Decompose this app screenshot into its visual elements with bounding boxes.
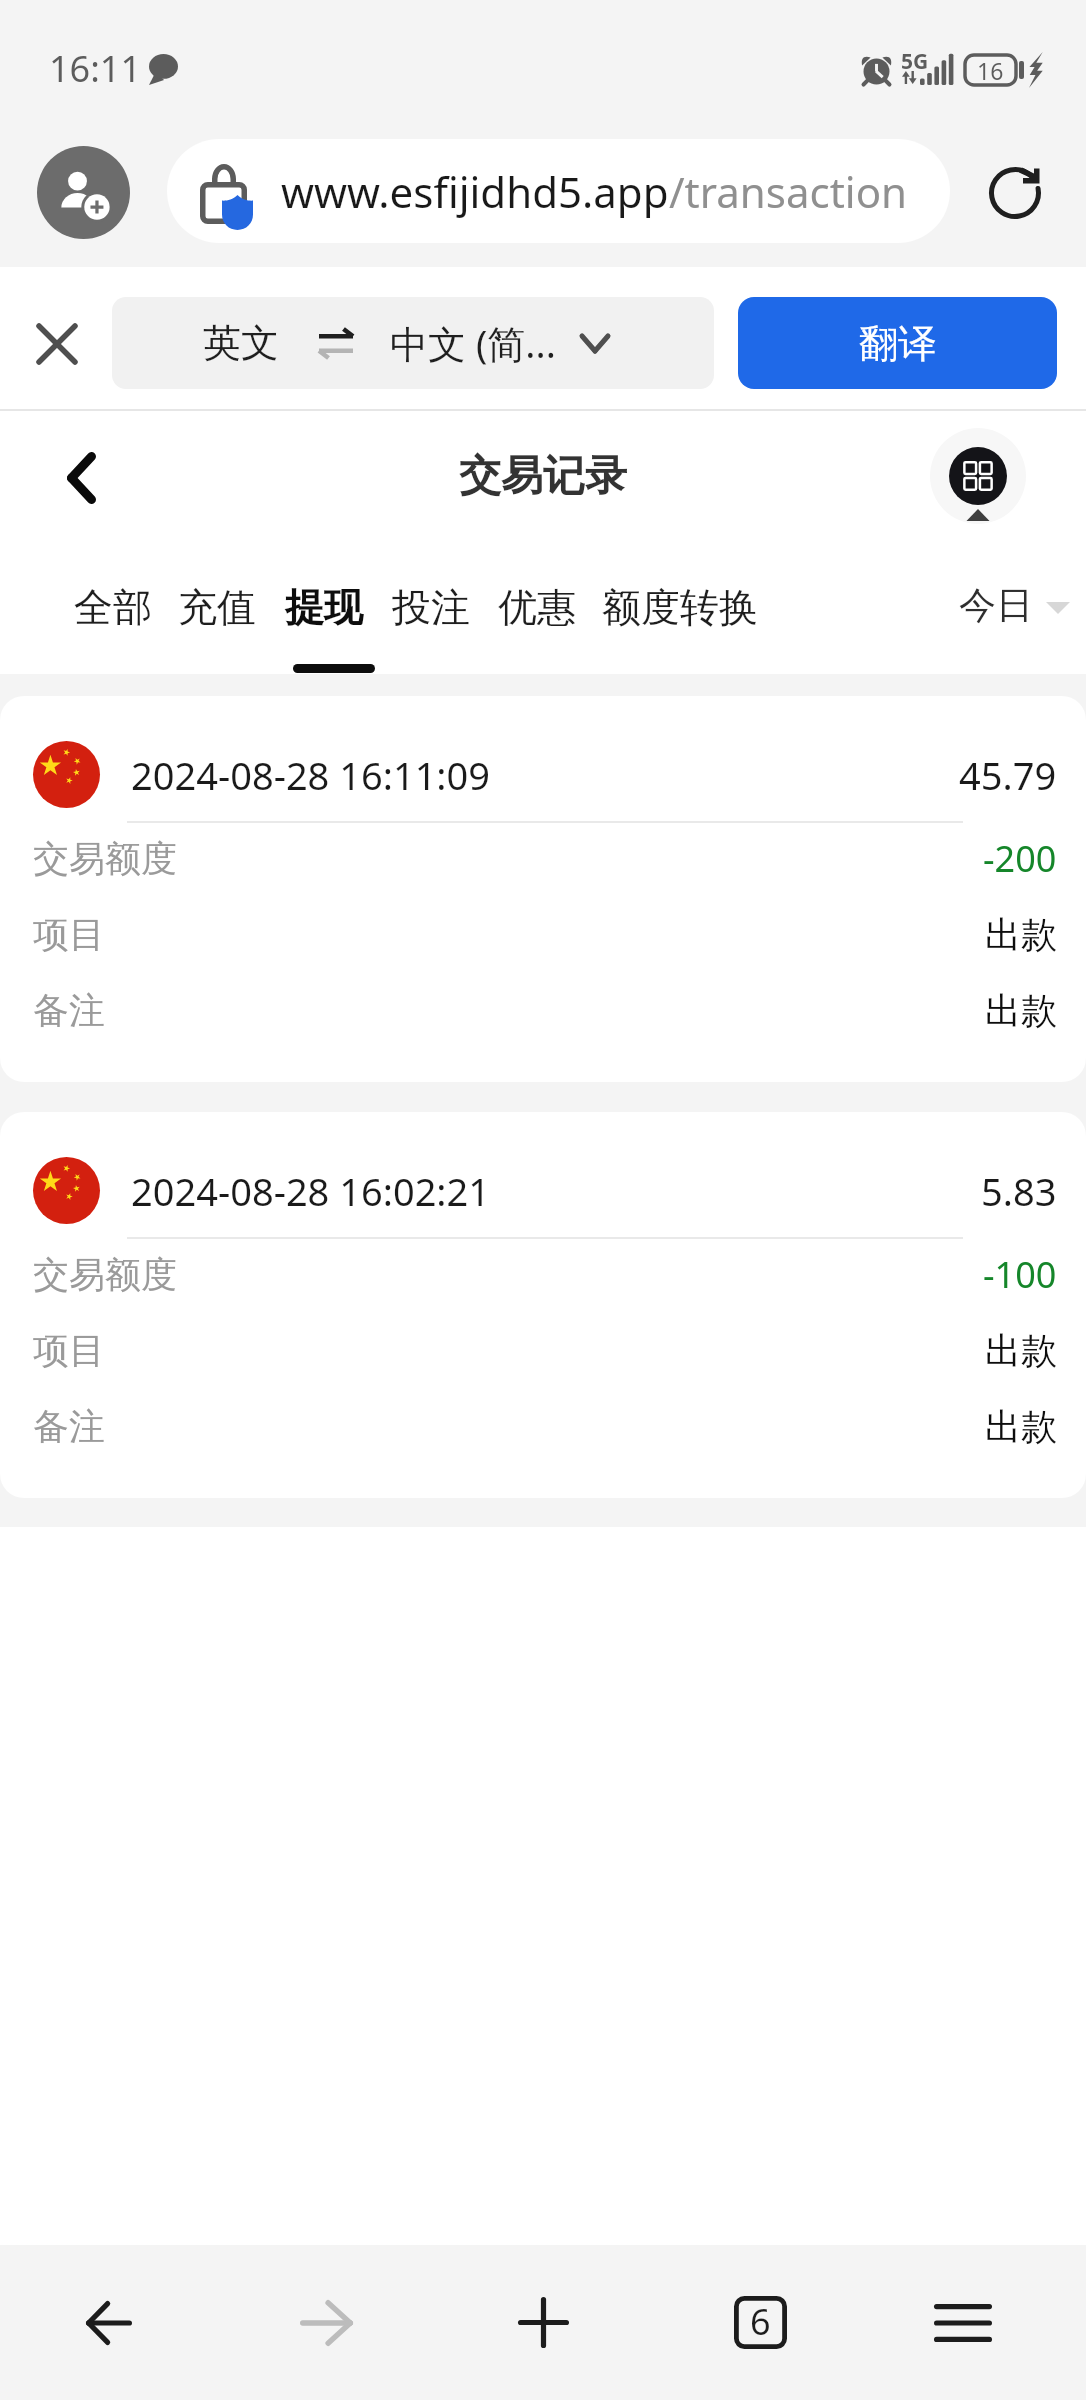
staticText: 投注 [392,583,470,632]
staticText: 全部 [74,583,152,632]
staticText: 出款 [985,912,1057,957]
staticText: 16:11 [49,44,142,93]
staticText: 项目 [33,1328,105,1373]
button[interactable]: 投注 [392,583,470,632]
staticText: 2024-08-28 16:11:09 [131,749,491,801]
button[interactable]: 提现 [283,583,365,673]
staticText: 项目 [33,912,105,957]
staticText: 英文 [203,319,279,367]
button[interactable]: Tabs [652,2245,869,2400]
button[interactable]: 充值 [178,583,256,632]
button[interactable]: Apps [930,428,1026,524]
button[interactable]: 优惠 [498,583,576,632]
button[interactable]: Profile [37,146,130,239]
button[interactable]: New tab [435,2245,652,2400]
staticText: 出款 [985,1328,1057,1373]
staticText: 交易记录 [459,450,627,503]
button[interactable]: Back [0,411,150,545]
staticText: 16 [977,55,1004,85]
staticText: 45.79 [959,749,1057,801]
button[interactable]: 2024-08-28 16:11:09 [0,696,1086,1082]
staticText: 优惠 [498,583,576,632]
staticText: 5G [901,47,929,76]
button[interactable]: 2024-08-28 16:02:21 [0,1112,1086,1498]
staticText: 出款 [985,1404,1057,1449]
button[interactable]: Close [9,296,105,392]
staticText: www.esfijidhd5.app [281,163,669,220]
staticText: 额度转换 [602,583,758,632]
button[interactable]: Back [0,2245,218,2400]
button[interactable]: 今日 [959,582,1070,629]
button[interactable]: 全部 [74,583,152,632]
staticText: 今日 [959,582,1033,629]
staticText: 出款 [985,988,1057,1033]
button[interactable]: Refresh [976,154,1056,234]
button[interactable]: 额度转换 [602,583,758,632]
staticText: -100 [983,1250,1057,1299]
button[interactable]: 翻译 [738,297,1057,389]
staticText: 中文 (简... [390,317,556,369]
button[interactable]: Forward [218,2245,435,2400]
staticText: 备注 [33,988,105,1033]
staticText: 交易额度 [33,1252,177,1297]
button[interactable]: 英文 [112,297,714,389]
staticText: 6 [750,2297,771,2346]
staticText: -200 [983,834,1057,883]
staticText: 5.83 [981,1165,1057,1217]
staticText: 提现 [285,583,363,632]
staticText: 交易额度 [33,836,177,881]
staticText: /transaction [669,163,908,220]
button[interactable]: Menu [869,2245,1086,2400]
button[interactable]: www.esfijidhd5.app [167,139,950,243]
staticText: 2024-08-28 16:02:21 [131,1165,491,1217]
staticText: 充值 [178,583,256,632]
staticText: 备注 [33,1404,105,1449]
staticText: 翻译 [859,319,937,368]
